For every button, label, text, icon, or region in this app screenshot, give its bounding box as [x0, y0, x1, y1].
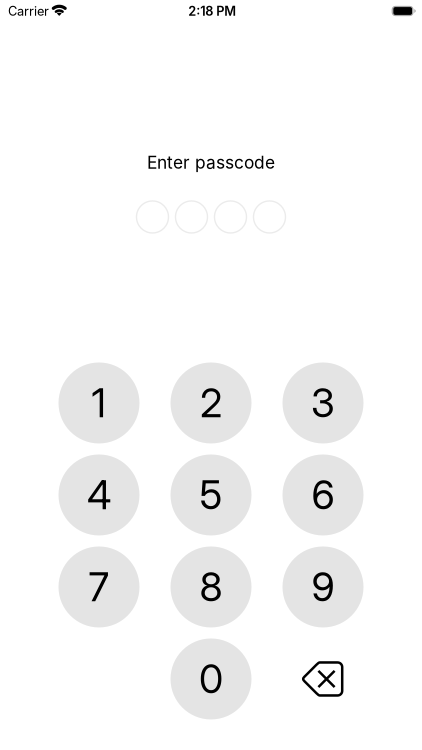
button[interactable]: 7	[58, 546, 139, 627]
button[interactable]: 6	[282, 454, 363, 535]
button[interactable]: 4	[58, 454, 139, 535]
staticText: 1	[91, 379, 106, 427]
staticText: 5	[199, 471, 222, 519]
staticText: 8	[199, 563, 222, 611]
button[interactable]: 2	[170, 362, 251, 443]
staticText: 7	[88, 563, 109, 611]
staticText: Carrier	[8, 3, 49, 19]
button[interactable]: 0	[170, 638, 251, 719]
staticText: 3	[311, 379, 335, 427]
staticText: 2:18 PM	[188, 3, 236, 19]
button[interactable]: 9	[282, 546, 363, 627]
staticText: 9	[311, 563, 334, 611]
staticText: Enter passcode	[147, 152, 275, 173]
button[interactable]: 5	[170, 454, 251, 535]
button[interactable]: 3	[282, 362, 363, 443]
staticText: 6	[311, 471, 334, 519]
staticText: 2	[200, 379, 222, 427]
staticText: 0	[199, 655, 223, 703]
button[interactable]: 8	[170, 546, 251, 627]
button[interactable]: Delete	[282, 638, 363, 719]
staticText: 4	[87, 471, 111, 519]
button[interactable]: 1	[58, 362, 139, 443]
